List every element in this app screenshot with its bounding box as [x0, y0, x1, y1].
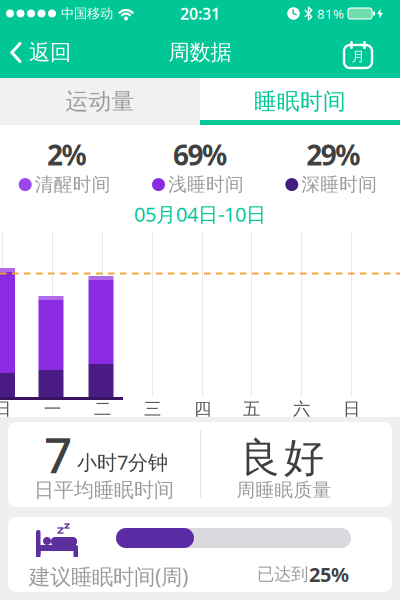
staticText: 81%	[317, 5, 344, 22]
staticText: 日	[0, 398, 11, 420]
staticText: 已达到	[257, 564, 308, 585]
staticText: 25%	[309, 561, 349, 588]
staticText: 深睡时间	[301, 173, 377, 196]
staticText: 五	[243, 398, 260, 420]
staticText: 69%	[173, 136, 227, 173]
staticText: 周数据	[168, 39, 231, 66]
staticText: 睡眠时间	[254, 88, 346, 115]
staticText: 运动量	[65, 88, 134, 115]
button[interactable]: 05月04日-10日	[0, 196, 400, 232]
staticText: 周睡眠质量	[236, 478, 331, 501]
staticText: 良好	[240, 433, 324, 482]
staticText: 05月04日-10日	[134, 201, 266, 227]
button[interactable]: 运动量	[0, 78, 200, 125]
staticText: 月	[351, 48, 364, 65]
button[interactable]: 月	[344, 39, 400, 66]
staticText: 三	[144, 398, 161, 420]
staticText: 中国移动	[61, 5, 113, 22]
staticText: 六	[293, 398, 310, 420]
staticText: 建议睡眠时间(周)	[29, 562, 188, 590]
staticText: 一	[44, 398, 61, 420]
staticText: 日	[343, 398, 360, 420]
staticText: 浅睡时间	[168, 173, 244, 196]
staticText: 29%	[306, 136, 360, 173]
staticText: 返回	[29, 39, 71, 66]
staticText: 2%	[47, 136, 86, 173]
button[interactable]: 睡眠时间	[200, 78, 400, 125]
staticText: 20:31	[180, 3, 220, 24]
staticText: 四	[194, 398, 211, 420]
staticText: 7	[44, 421, 72, 487]
button[interactable]: 返回	[0, 39, 71, 66]
staticText: 日平均睡眠时间	[34, 478, 174, 502]
staticText: 二	[94, 398, 111, 420]
staticText: 小时7分钟	[77, 449, 168, 475]
staticText: 清醒时间	[35, 173, 111, 196]
